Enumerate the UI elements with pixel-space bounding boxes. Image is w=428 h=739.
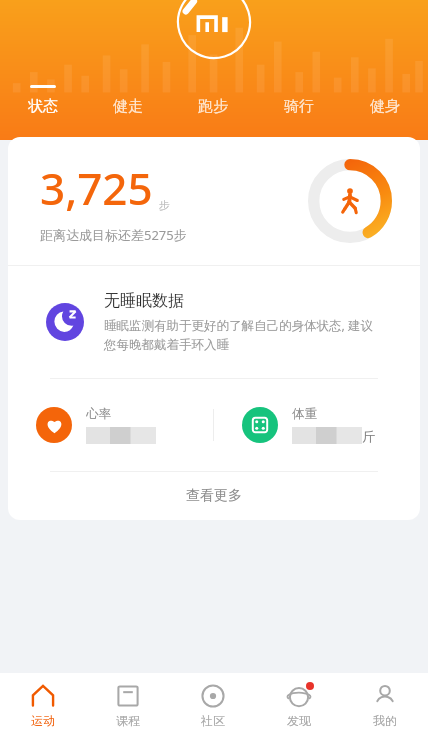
button[interactable]: Step goal progress <box>308 159 392 243</box>
staticText: 发现 <box>287 713 311 728</box>
button[interactable]: 状态 <box>0 72 85 128</box>
button[interactable]: Mi Band device <box>176 0 252 60</box>
staticText: 心率 <box>86 406 111 422</box>
staticText: 大家都在练 <box>18 161 108 184</box>
staticText: 社区 <box>201 713 225 728</box>
button[interactable]: 运动 <box>0 673 85 739</box>
button[interactable]: 我的 <box>342 673 428 739</box>
staticText: 查看更多 <box>186 487 242 505</box>
staticText: 步 <box>159 198 170 212</box>
staticText: 无睡眠数据 <box>104 291 184 311</box>
staticText: 斤 <box>362 428 375 444</box>
button[interactable]: 发现 <box>256 673 342 739</box>
staticText: 您每晚都戴着手环入睡 <box>104 337 229 353</box>
button[interactable]: 全身锻炼计划 <box>8 208 420 328</box>
staticText: 健走 <box>113 97 143 116</box>
button[interactable]: 体重 <box>214 379 420 471</box>
staticText: 骑行 <box>284 97 314 116</box>
button[interactable]: 骑行 <box>256 72 342 128</box>
staticText: 体重 <box>292 406 317 422</box>
staticText: 查看更多 <box>352 164 404 180</box>
staticText: 距离达成目标还差5275步 <box>40 226 187 244</box>
staticText: 跑步 <box>198 97 228 116</box>
staticText: 健身 <box>370 97 400 116</box>
staticText: 3,725 <box>40 158 153 218</box>
staticText: 我的 <box>373 713 397 728</box>
button[interactable]: 健身 <box>342 72 428 128</box>
button[interactable]: 社区 <box>170 673 256 739</box>
staticText: 运动 <box>31 713 55 728</box>
button[interactable]: 跑步 <box>170 72 256 128</box>
button[interactable]: 查看更多 <box>8 472 420 520</box>
staticText: 状态 <box>28 97 58 116</box>
button[interactable]: 课程 <box>85 673 170 739</box>
button[interactable]: 查看更多 <box>346 158 410 186</box>
button[interactable]: 健走 <box>85 72 170 128</box>
staticText: 课程 <box>116 713 140 728</box>
staticText: 睡眠监测有助于更好的了解自己的身体状态, 建议 <box>104 317 374 334</box>
button[interactable]: 心率 <box>8 379 213 471</box>
button[interactable]: 无睡眠数据 <box>8 266 420 378</box>
